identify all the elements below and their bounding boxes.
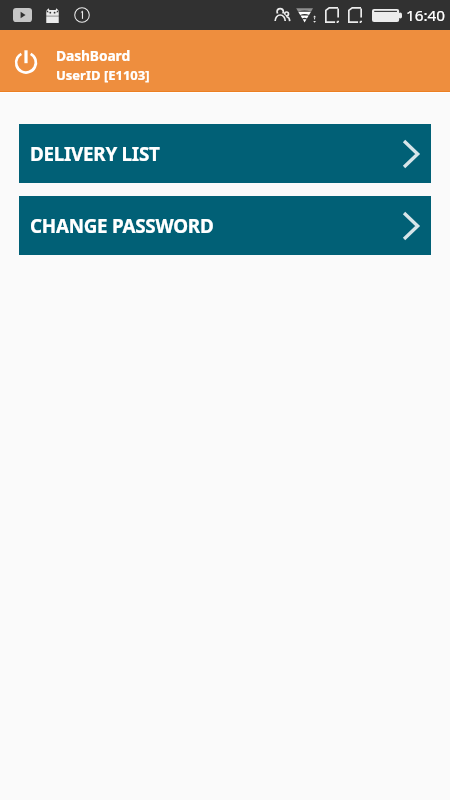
staticText: UserID [E1103] bbox=[56, 66, 150, 84]
staticText: DELIVERY LIST bbox=[30, 141, 160, 167]
button[interactable]: CHANGE PASSWORD bbox=[19, 196, 431, 255]
button[interactable]: Logout bbox=[10, 46, 41, 77]
staticText: 16:40 bbox=[406, 5, 446, 26]
staticText: CHANGE PASSWORD bbox=[30, 213, 214, 239]
staticText: DashBoard bbox=[56, 46, 131, 65]
button[interactable]: DELIVERY LIST bbox=[19, 124, 431, 183]
